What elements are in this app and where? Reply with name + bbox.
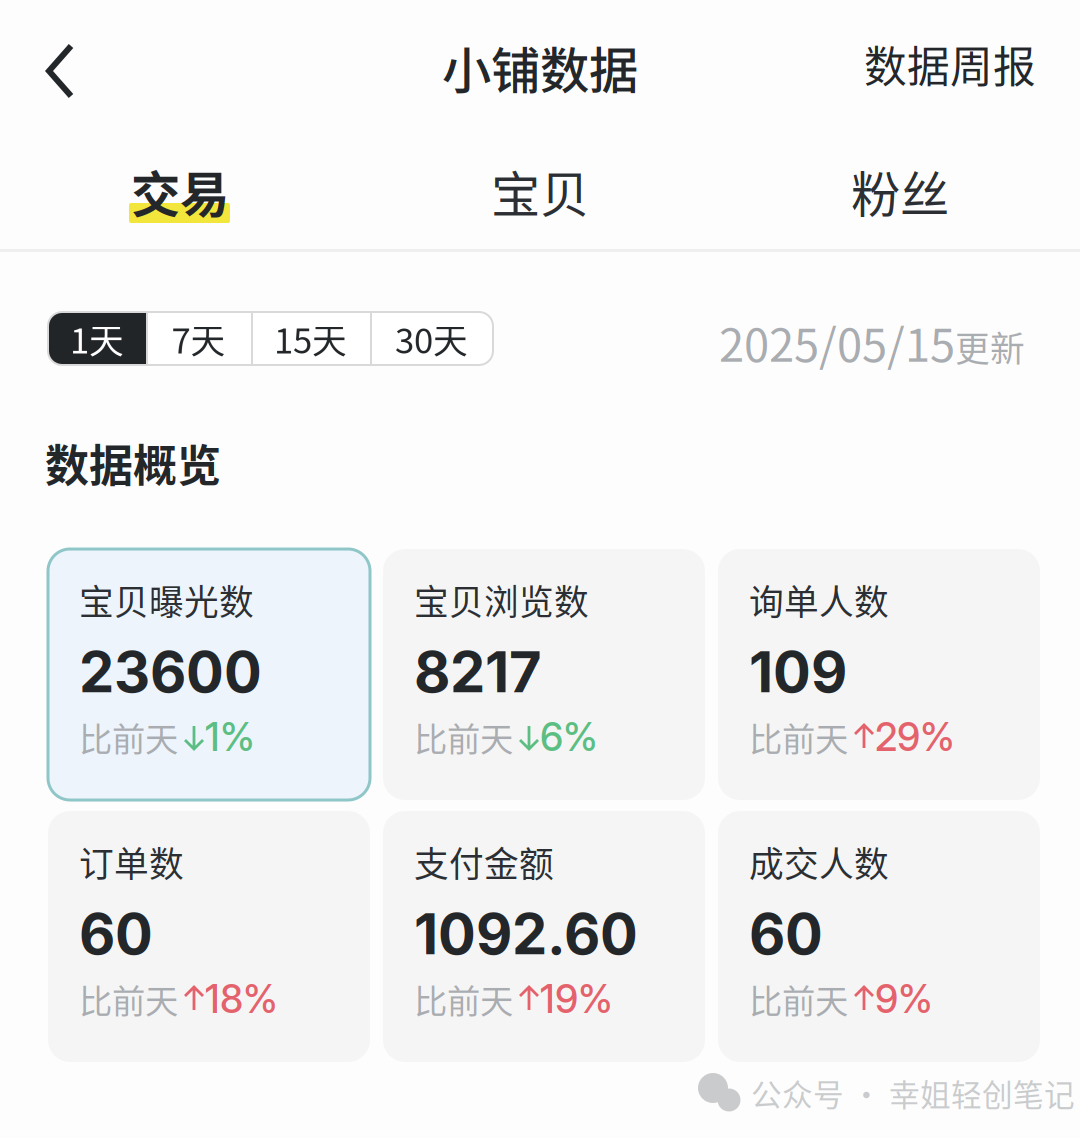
staticText: 8217 xyxy=(414,638,542,706)
button[interactable]: 15天 xyxy=(251,312,370,365)
staticText: 19% xyxy=(540,976,613,1022)
staticText: 23600 xyxy=(79,638,262,706)
staticText: 数据概览 xyxy=(45,431,221,495)
staticText: 比前天 xyxy=(414,975,513,1023)
staticText: 29% xyxy=(875,714,955,760)
button[interactable]: 订单数 xyxy=(48,811,370,1062)
staticText: 60 xyxy=(79,900,153,968)
staticText: 9% xyxy=(875,976,933,1022)
staticText: 交易 xyxy=(131,155,229,227)
staticText: 7天 xyxy=(171,313,225,364)
staticText: 公众号 · 幸姐轻创笔记 xyxy=(751,1071,1075,1115)
staticText: 宝贝 xyxy=(491,155,589,227)
staticText: 比前天 xyxy=(749,975,848,1023)
staticText: 更新 xyxy=(955,322,1025,372)
button[interactable]: 交易 xyxy=(0,150,360,262)
button[interactable]: 粉丝 xyxy=(720,163,1080,219)
staticText: 15天 xyxy=(274,313,347,364)
staticText: 数据周报 xyxy=(864,33,1036,95)
button[interactable]: 宝贝曝光数 xyxy=(48,549,370,800)
button[interactable]: 宝贝浏览数 xyxy=(383,549,705,800)
staticText: 60 xyxy=(749,900,823,968)
button[interactable]: 7天 xyxy=(146,312,251,365)
staticText: 1092.60 xyxy=(414,900,638,968)
staticText: 1% xyxy=(205,714,255,760)
button[interactable]: 支付金额 xyxy=(383,811,705,1062)
button[interactable]: 30天 xyxy=(370,312,493,365)
staticText: 30天 xyxy=(395,313,468,364)
staticText: 支付金额 xyxy=(414,837,554,887)
staticText: 18% xyxy=(205,976,278,1022)
staticText: 订单数 xyxy=(79,837,184,887)
staticText: 小铺数据 xyxy=(442,31,638,103)
staticText: 宝贝浏览数 xyxy=(414,575,589,625)
staticText: 比前天 xyxy=(79,713,178,761)
button[interactable]: 数据周报 xyxy=(816,9,1036,119)
staticText: 6% xyxy=(540,714,598,760)
staticText: 成交人数 xyxy=(749,837,889,887)
button[interactable]: 1天 xyxy=(48,312,146,365)
button[interactable]: 成交人数 xyxy=(718,811,1040,1062)
button[interactable]: 宝贝 xyxy=(360,163,720,219)
staticText: 宝贝曝光数 xyxy=(79,575,254,625)
button[interactable]: Back xyxy=(12,16,108,126)
staticText: 1天 xyxy=(70,313,124,364)
staticText: 粉丝 xyxy=(851,155,949,227)
button[interactable]: 询单人数 xyxy=(718,549,1040,800)
staticText: 2025/05/15 xyxy=(719,309,955,375)
staticText: 询单人数 xyxy=(749,575,889,625)
staticText: 比前天 xyxy=(414,713,513,761)
staticText: 比前天 xyxy=(749,713,848,761)
staticText: 比前天 xyxy=(79,975,178,1023)
staticText: 109 xyxy=(749,638,847,706)
